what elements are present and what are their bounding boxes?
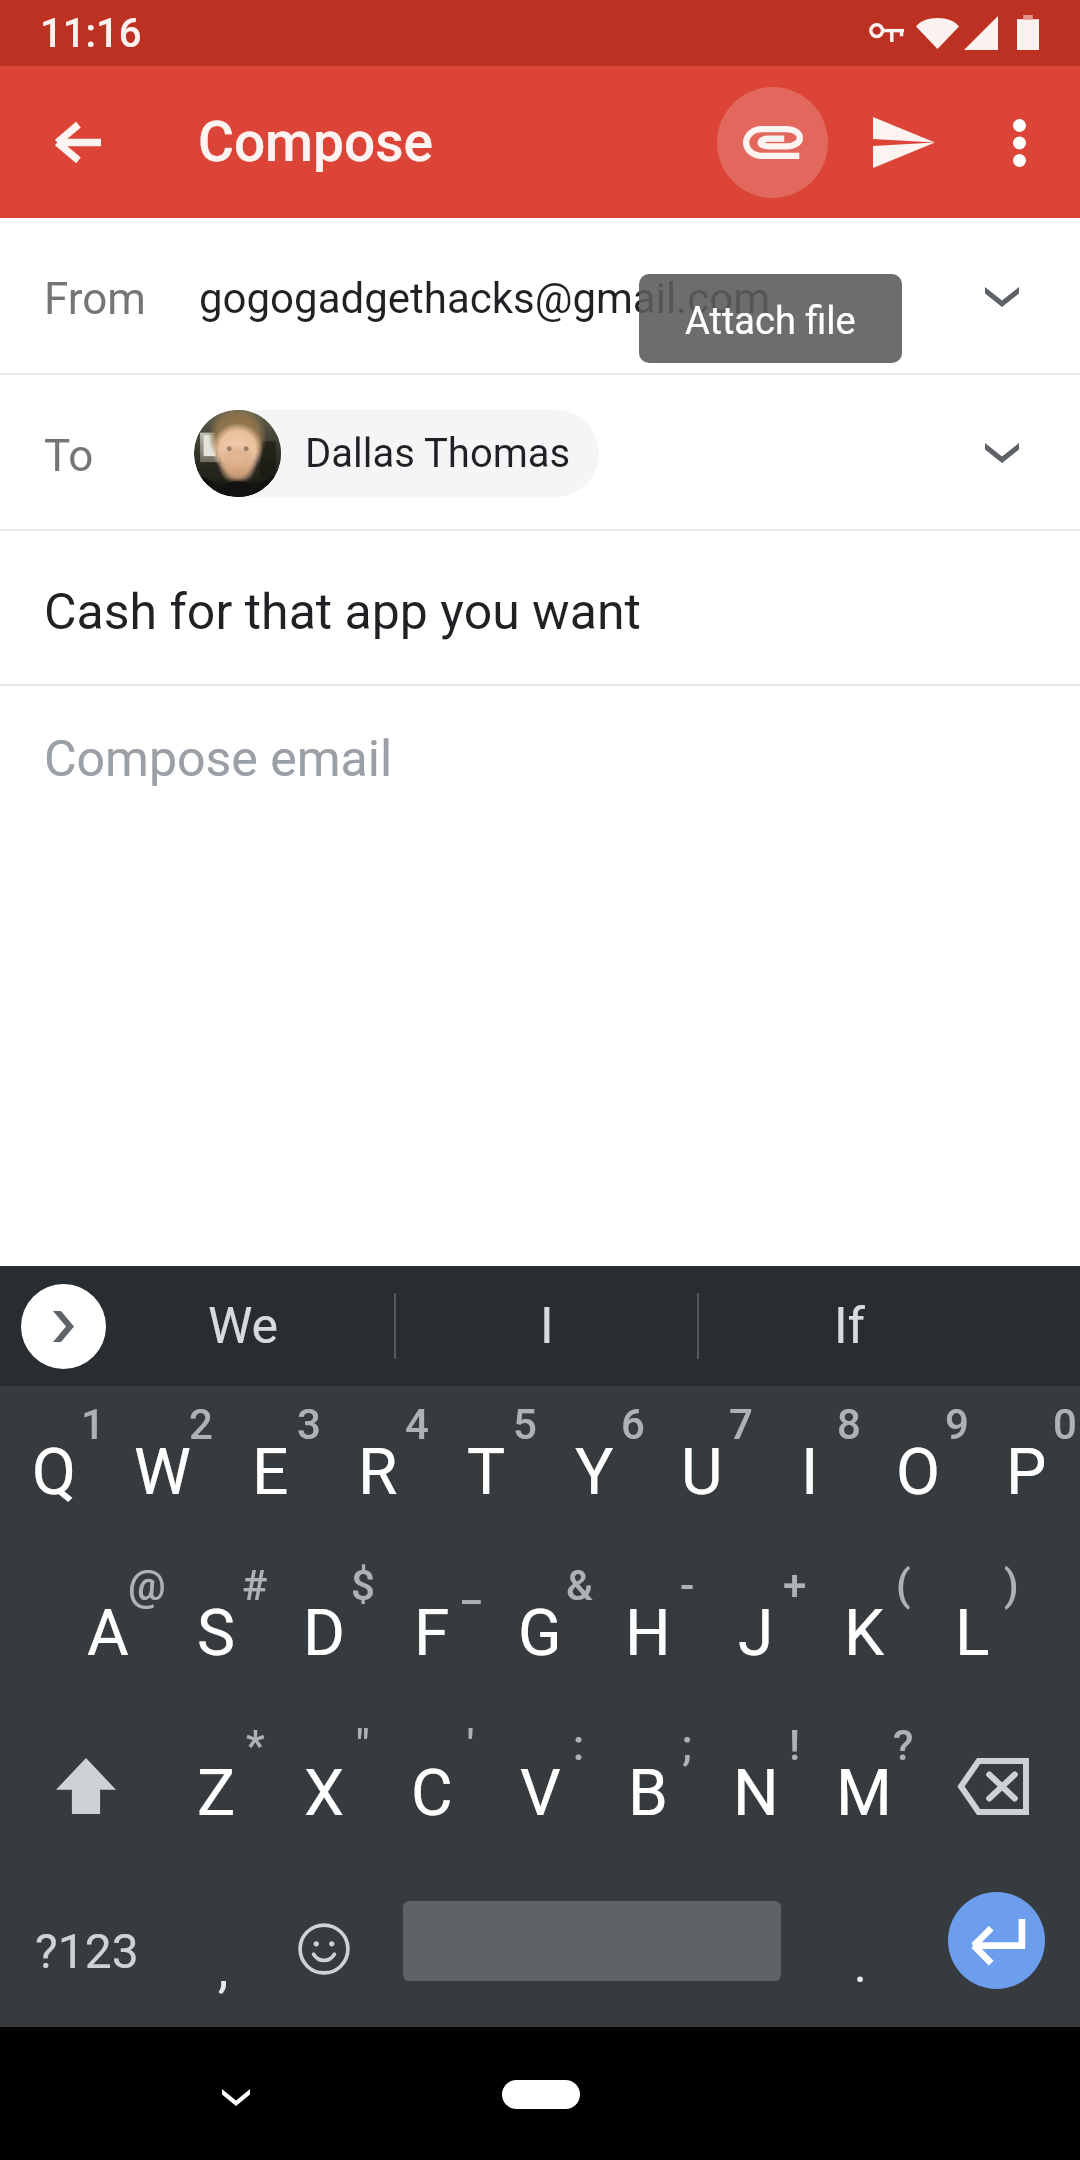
button[interactable]: 9 (864, 1386, 972, 1547)
button[interactable]: + (702, 1547, 810, 1707)
button[interactable]: - (594, 1547, 702, 1707)
button[interactable]: Shift (0, 1707, 162, 1867)
button[interactable]: @ (54, 1547, 162, 1707)
staticText: 2 (189, 1400, 213, 1449)
button[interactable]: # (162, 1547, 270, 1707)
staticText: # (242, 1561, 268, 1610)
button[interactable]: ; (594, 1707, 702, 1867)
button[interactable]: Expand from (957, 252, 1047, 342)
staticText: A (87, 1596, 129, 1671)
button[interactable]: ! (702, 1707, 810, 1867)
staticText: - (680, 1561, 695, 1610)
button[interactable]: More suggestions (21, 1284, 106, 1369)
staticText: I (540, 1297, 554, 1356)
button[interactable]: $ (270, 1547, 378, 1707)
staticText: 7 (729, 1400, 753, 1449)
staticText: 9 (945, 1400, 969, 1449)
staticText: 8 (837, 1400, 861, 1449)
staticText: T (467, 1435, 506, 1510)
staticText: 5 (513, 1400, 537, 1449)
button[interactable]: 4 (324, 1386, 432, 1547)
button[interactable]: Send (848, 87, 959, 198)
button[interactable]: Home (502, 2080, 580, 2109)
button[interactable]: ( (810, 1547, 918, 1707)
button[interactable]: 5 (432, 1386, 540, 1547)
staticText: Cash for that app you want (44, 583, 641, 642)
staticText: E (252, 1435, 289, 1510)
button[interactable]: Expand to (957, 408, 1047, 498)
staticText: X (304, 1756, 345, 1831)
staticText: F (414, 1596, 450, 1671)
staticText: U (681, 1435, 723, 1510)
button[interactable]: ) (918, 1547, 1026, 1707)
staticText: $ (351, 1561, 375, 1610)
button[interactable]: 1 (0, 1386, 108, 1547)
button[interactable]: 2 (108, 1386, 216, 1547)
button[interactable]: 6 (540, 1386, 648, 1547)
staticText: + (783, 1561, 807, 1610)
staticText: Compose email (44, 730, 393, 789)
staticText: M (836, 1756, 892, 1831)
staticText: N (733, 1756, 779, 1831)
staticText: 11:16 (40, 10, 142, 57)
button[interactable]: " (270, 1707, 378, 1867)
button[interactable]: 7 (648, 1386, 756, 1547)
button[interactable]: 8 (756, 1386, 864, 1547)
staticText: J (738, 1596, 774, 1671)
staticText: 0 (1053, 1400, 1077, 1449)
button[interactable]: Enter (912, 1867, 1080, 2027)
button[interactable]: Comma (174, 1867, 272, 2027)
button[interactable]: _ (378, 1547, 486, 1707)
button[interactable]: Space (376, 1867, 808, 2027)
staticText: , (218, 1939, 229, 2000)
button[interactable]: Delete (918, 1707, 1080, 1867)
button[interactable]: Dallas Thomas (194, 410, 599, 497)
staticText: V (520, 1756, 561, 1831)
staticText: ( (896, 1561, 911, 1610)
button[interactable]: If (699, 1266, 1000, 1386)
staticText: 4 (405, 1400, 429, 1449)
button[interactable]: Hide keyboard (191, 2053, 280, 2142)
staticText: 6 (621, 1400, 645, 1449)
button[interactable]: I (396, 1266, 697, 1386)
button[interactable]: Back (22, 87, 132, 197)
staticText: D (303, 1596, 345, 1671)
button[interactable]: 3 (216, 1386, 324, 1547)
staticText: _ (462, 1561, 481, 1610)
staticText: If (834, 1297, 865, 1356)
staticText: . (854, 1937, 867, 1993)
staticText: Compose (198, 110, 433, 174)
staticText: ; (682, 1721, 693, 1770)
staticText: : (573, 1721, 585, 1770)
staticText: @ (128, 1561, 166, 1610)
button[interactable]: Period (808, 1867, 912, 2027)
button[interactable]: : (486, 1707, 594, 1867)
button[interactable]: 0 (972, 1386, 1080, 1547)
staticText: Q (32, 1435, 77, 1510)
staticText: Attach file (685, 299, 856, 344)
button[interactable]: & (486, 1547, 594, 1707)
staticText: & (566, 1561, 593, 1610)
staticText: " (356, 1721, 370, 1770)
staticText: gogogadgethacks@gmail.com (199, 274, 770, 323)
staticText: We (208, 1297, 279, 1356)
staticText: W (134, 1435, 191, 1510)
staticText: * (246, 1721, 265, 1770)
staticText: P (1006, 1435, 1047, 1510)
staticText: Dallas Thomas (305, 430, 571, 477)
staticText: R (358, 1435, 398, 1510)
button[interactable]: We (92, 1266, 394, 1386)
button[interactable]: ?123 (0, 1867, 174, 2027)
staticText: K (844, 1596, 885, 1671)
button[interactable]: Emoji (272, 1867, 376, 2027)
staticText: S (197, 1596, 235, 1671)
staticText: O (896, 1435, 941, 1510)
staticText: H (625, 1596, 671, 1671)
staticText: ! (789, 1721, 801, 1770)
button[interactable]: * (162, 1707, 270, 1867)
button[interactable]: More options (964, 87, 1075, 198)
button[interactable]: ' (378, 1707, 486, 1867)
button[interactable]: ? (810, 1707, 918, 1867)
button[interactable]: Attach file (717, 87, 828, 198)
staticText: ) (1004, 1561, 1019, 1610)
